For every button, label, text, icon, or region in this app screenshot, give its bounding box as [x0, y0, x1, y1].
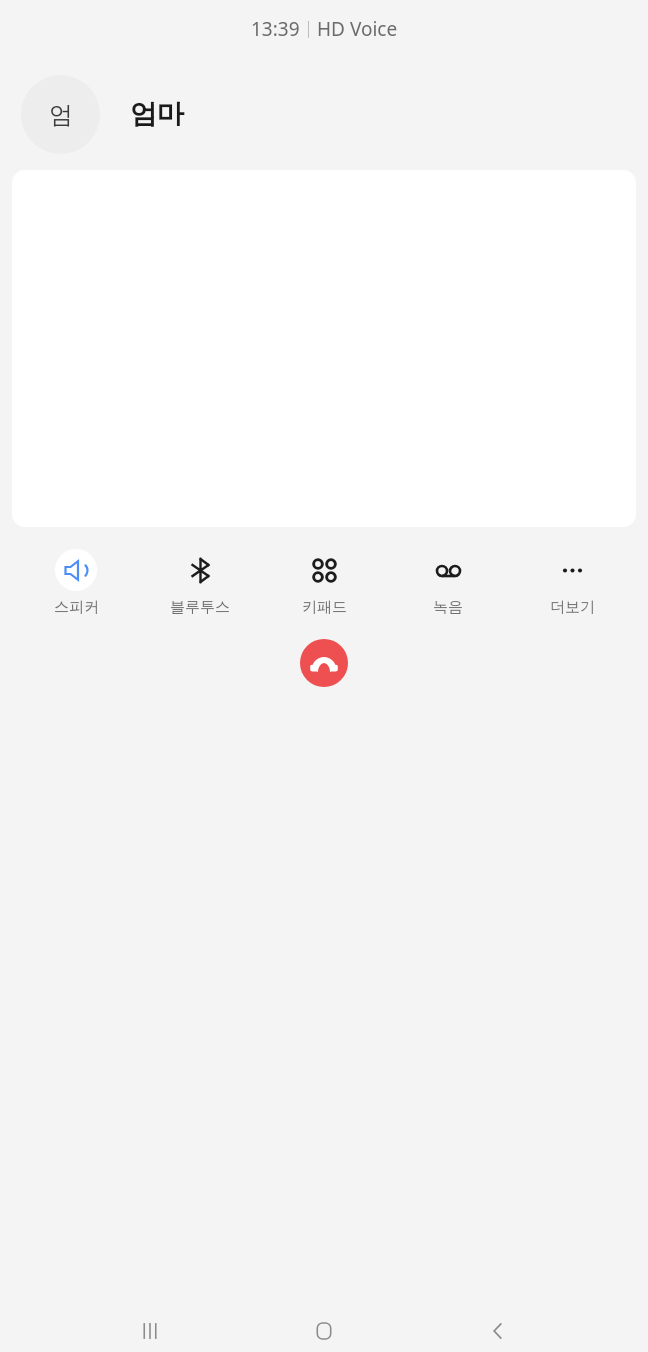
staticText: 13:39 [251, 16, 300, 42]
staticText: 블루투스 [170, 598, 230, 617]
staticText: 키패드 [302, 598, 347, 617]
button[interactable]: Back [474, 1309, 522, 1352]
staticText: 스피커 [54, 598, 99, 617]
button[interactable]: 스피커 [28, 549, 124, 617]
staticText: 엄 [49, 100, 73, 130]
button[interactable]: End call [300, 639, 348, 687]
button[interactable]: 블루투스 [152, 549, 248, 617]
button[interactable]: 녹음 [400, 549, 496, 617]
staticText: HD Voice [317, 16, 398, 42]
button[interactable]: 키패드 [276, 549, 372, 617]
button[interactable]: Home [300, 1309, 348, 1352]
staticText: 더보기 [550, 598, 595, 617]
staticText: 녹음 [433, 598, 463, 617]
staticText: 엄마 [130, 97, 184, 131]
button[interactable]: Recent apps [126, 1309, 174, 1352]
button[interactable]: 더보기 [524, 549, 620, 617]
button[interactable]: 엄 [21, 75, 100, 154]
